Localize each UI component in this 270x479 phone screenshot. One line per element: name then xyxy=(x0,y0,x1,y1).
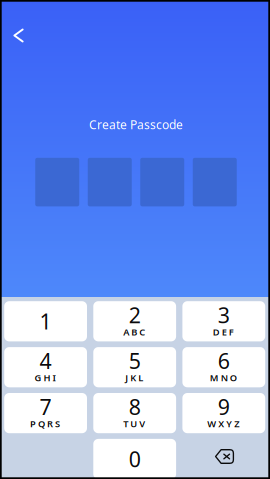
staticText: Create Passcode xyxy=(89,116,183,132)
button[interactable]: 4 xyxy=(4,347,87,387)
staticText: 5 xyxy=(129,347,141,375)
staticText: 7 xyxy=(40,392,52,421)
button[interactable]: 8 xyxy=(93,393,176,433)
button[interactable]: Back xyxy=(1,18,35,52)
staticText: 4 xyxy=(40,347,52,375)
button[interactable]: 6 xyxy=(182,347,265,387)
staticText: 6 xyxy=(218,347,230,375)
staticText: W X Y Z xyxy=(207,417,239,430)
staticText: 3 xyxy=(218,301,230,329)
staticText: T U V xyxy=(123,417,145,430)
button[interactable]: 9 xyxy=(182,393,265,433)
staticText: A B C xyxy=(123,326,145,338)
button[interactable]: 7 xyxy=(4,393,87,433)
button[interactable]: Delete xyxy=(183,436,266,477)
staticText: P Q R S xyxy=(30,417,60,430)
button[interactable]: 3 xyxy=(182,301,265,341)
button[interactable]: 0 xyxy=(93,439,176,479)
button[interactable]: 5 xyxy=(93,347,176,387)
button[interactable]: 1 xyxy=(4,301,87,341)
staticText: J K L xyxy=(125,371,143,384)
button[interactable]: 2 xyxy=(93,301,176,341)
staticText: 0 xyxy=(129,445,141,473)
staticText: 8 xyxy=(129,392,141,421)
staticText: M N O xyxy=(210,371,237,384)
staticText: 2 xyxy=(129,301,141,329)
staticText: G H I xyxy=(35,371,56,384)
staticText: 9 xyxy=(218,392,230,421)
staticText: 1 xyxy=(40,307,52,335)
staticText: D E F xyxy=(213,326,234,338)
